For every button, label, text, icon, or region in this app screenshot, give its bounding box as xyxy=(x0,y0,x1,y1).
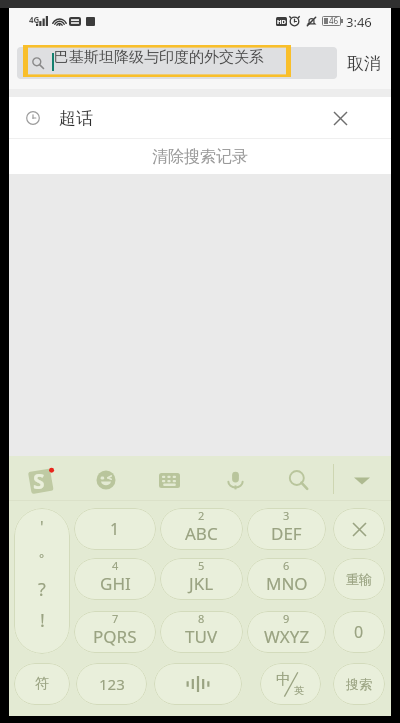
staticText: 取消 xyxy=(347,53,381,74)
button[interactable]: × xyxy=(333,508,385,550)
staticText: 123 xyxy=(99,674,125,694)
staticText: PQRS xyxy=(93,625,137,648)
button[interactable]: 清除搜索记录 xyxy=(9,139,391,174)
button[interactable]: Sogou input xyxy=(27,466,57,492)
staticText: 清除搜索记录 xyxy=(152,147,248,167)
button[interactable]: 符 xyxy=(14,663,70,705)
button[interactable]: Space xyxy=(154,663,242,705)
staticText: 2 xyxy=(198,508,205,523)
staticText: MNO xyxy=(266,572,308,595)
staticText: 英 xyxy=(294,684,304,697)
staticText: 重输 xyxy=(346,571,372,587)
button[interactable]: 重输 xyxy=(333,558,385,600)
button[interactable]: 取消 xyxy=(342,47,386,79)
staticText: 6 xyxy=(283,558,290,573)
button[interactable]: JKL xyxy=(160,558,243,600)
staticText: HD xyxy=(277,18,286,26)
button[interactable]: 超话 xyxy=(9,97,391,138)
staticText: 巴基斯坦降级与印度的外交关系 xyxy=(54,48,264,67)
staticText: S xyxy=(33,467,45,493)
button[interactable]: 巴基斯坦降级与印度的外交关系 xyxy=(17,47,337,79)
staticText: 3:46 xyxy=(346,13,372,31)
staticText: ? xyxy=(38,577,46,602)
button[interactable]: ABC xyxy=(160,508,243,550)
staticText: ' xyxy=(40,516,44,538)
button[interactable]: DEF xyxy=(247,508,326,550)
staticText: 3 xyxy=(283,508,290,523)
staticText: 9 xyxy=(283,611,290,626)
staticText: 中 xyxy=(276,670,291,689)
button[interactable]: 1 xyxy=(74,508,156,550)
staticText: 46 xyxy=(329,15,339,25)
staticText: 4G xyxy=(29,14,40,25)
button[interactable]: Hide keyboard xyxy=(351,469,373,491)
button[interactable]: Remove xyxy=(327,105,353,131)
button[interactable]: 123 xyxy=(76,663,147,705)
staticText: ABC xyxy=(185,522,218,545)
staticText: JKL xyxy=(189,572,214,595)
staticText: 5 xyxy=(198,558,205,573)
button[interactable]: TUV xyxy=(160,611,243,653)
staticText: 1 xyxy=(110,518,120,540)
button[interactable]: WXYZ xyxy=(247,611,326,653)
staticText: 7 xyxy=(112,611,119,626)
button[interactable]: PQRS xyxy=(74,611,156,653)
button[interactable]: GHI xyxy=(74,558,156,600)
button[interactable]: Search xyxy=(287,469,309,491)
staticText: WXYZ xyxy=(264,625,310,648)
staticText: DEF xyxy=(271,522,302,545)
staticText: 0 xyxy=(354,621,364,643)
button[interactable]: 搜索 xyxy=(333,663,385,705)
button[interactable]: Voice input xyxy=(224,469,246,491)
staticText: GHI xyxy=(100,572,131,595)
button[interactable]: MNO xyxy=(247,558,326,600)
staticText: ! xyxy=(40,608,45,633)
staticText: ° xyxy=(39,550,45,566)
button[interactable]: symbols xyxy=(14,508,70,654)
button[interactable]: 0 xyxy=(333,611,385,653)
staticText: 8 xyxy=(198,611,205,626)
button[interactable]: Keyboard xyxy=(158,469,180,491)
button[interactable]: 中英 xyxy=(260,663,321,705)
staticText: TUV xyxy=(185,625,218,648)
staticText: 符 xyxy=(35,675,49,693)
staticText: 搜索 xyxy=(346,676,372,692)
button[interactable]: Emoji xyxy=(95,469,117,491)
staticText: 超话 xyxy=(59,108,93,129)
staticText: 4 xyxy=(112,558,119,573)
